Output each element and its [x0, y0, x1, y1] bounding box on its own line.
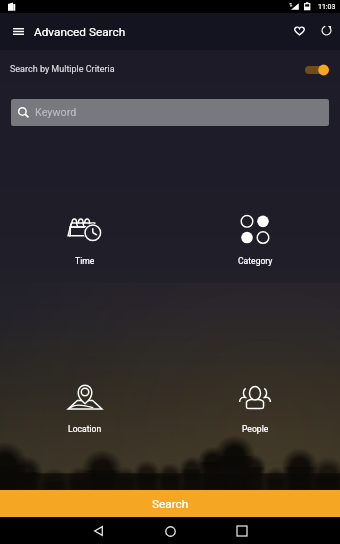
staticText: Search — [152, 497, 189, 511]
button[interactable]: Keyword — [11, 99, 329, 126]
staticText: Time — [75, 256, 95, 266]
button[interactable]: Back — [85, 518, 111, 544]
button[interactable]: Refresh — [314, 18, 339, 43]
button[interactable]: Home — [157, 518, 183, 544]
staticText: 11:03 — [318, 3, 336, 11]
button[interactable]: Category — [216, 213, 294, 271]
staticText: Advanced Search — [34, 25, 126, 39]
button[interactable]: Recent apps — [229, 518, 255, 544]
staticText: Keyword — [35, 106, 77, 119]
button[interactable]: Favorites — [287, 18, 312, 43]
staticText: Search by Multiple Criteria — [10, 64, 115, 75]
staticText: Location — [68, 424, 102, 434]
button[interactable]: Time — [46, 213, 124, 271]
button[interactable]: People — [216, 381, 294, 439]
button[interactable]: Location — [46, 381, 124, 439]
button[interactable]: Search by Multiple Criteria — [10, 56, 329, 83]
button[interactable]: Search — [0, 490, 340, 517]
button[interactable]: Open navigation menu — [6, 19, 31, 44]
staticText: Category — [238, 256, 273, 266]
staticText: People — [242, 424, 269, 434]
